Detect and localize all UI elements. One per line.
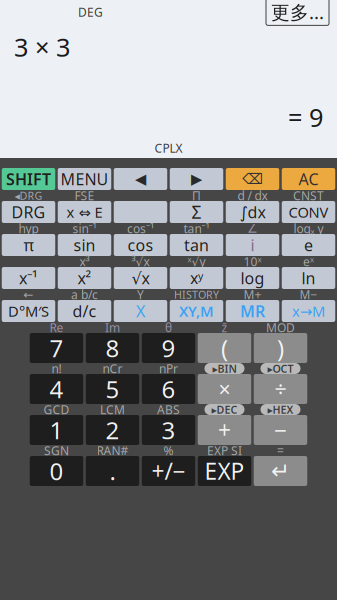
button[interactable]: e — [282, 234, 335, 256]
button[interactable]: Σ — [170, 201, 223, 223]
button[interactable]: − — [254, 415, 307, 445]
staticText: 7 — [49, 332, 63, 364]
staticText: 5 — [105, 373, 119, 405]
staticText: xʸ — [190, 267, 203, 289]
button[interactable]: . — [86, 456, 139, 486]
button[interactable]: ∫dx — [226, 201, 279, 223]
button[interactable]: EXP — [198, 456, 251, 486]
staticText: CPLX — [154, 140, 182, 156]
staticText: ³√x — [131, 253, 149, 269]
staticText: × — [218, 375, 230, 403]
button[interactable]: X — [114, 300, 167, 322]
staticText: x³ — [79, 253, 89, 269]
staticText: ▸BIN — [212, 361, 236, 376]
staticText: RAN# — [96, 442, 128, 458]
button[interactable]: SHIFT — [2, 168, 55, 190]
staticText: GCD — [43, 401, 69, 417]
staticText: M+ — [243, 286, 261, 302]
staticText: ⌫ — [242, 171, 263, 187]
staticText: ▶ — [191, 171, 202, 187]
button[interactable]: 3 — [142, 415, 195, 445]
staticText: x² — [77, 267, 91, 289]
staticText: a b/c — [71, 286, 98, 302]
button[interactable]: 2 — [86, 415, 139, 445]
button[interactable]: ↵ — [254, 456, 307, 486]
button[interactable]: 7 — [30, 333, 83, 363]
staticText: cos — [127, 234, 153, 256]
button[interactable]: CONV — [282, 201, 335, 223]
staticText: ▸OCT — [267, 361, 293, 376]
staticText: ABS — [157, 401, 180, 417]
staticText: = 9 — [288, 100, 323, 134]
button[interactable]: sin — [58, 234, 111, 256]
button[interactable]: 5 — [86, 374, 139, 404]
button[interactable]: 9 — [142, 333, 195, 363]
button[interactable]: MR — [226, 300, 279, 322]
button[interactable]: ÷ — [254, 374, 307, 404]
staticText: ▸DEC — [211, 402, 237, 417]
staticText: 8 — [105, 332, 119, 364]
button[interactable]: XY,M — [170, 300, 223, 322]
button[interactable]: ⌫ — [226, 168, 279, 190]
button[interactable]: log — [226, 267, 279, 289]
button[interactable]: ) — [254, 333, 307, 363]
button[interactable]: x ⇔ E — [58, 201, 111, 223]
staticText: ˣ√y — [187, 253, 205, 269]
staticText: x→M — [292, 301, 325, 321]
staticText: Im — [105, 319, 120, 335]
button[interactable]: AC — [282, 168, 335, 190]
staticText: ▸HEX — [267, 402, 293, 417]
button[interactable]: D°M′S — [2, 300, 55, 322]
staticText: ← — [23, 288, 33, 301]
staticText: MENU — [60, 168, 108, 190]
staticText: 0 — [49, 455, 63, 487]
staticText: ln — [301, 267, 315, 289]
button[interactable]: 0 — [30, 456, 83, 486]
button[interactable]: d/c — [58, 300, 111, 322]
staticText: sin — [73, 234, 95, 256]
staticText: = — [277, 442, 284, 458]
staticText: x ⇔ E — [66, 202, 102, 222]
staticText: +/− — [151, 456, 185, 486]
button[interactable]: x² — [58, 267, 111, 289]
button[interactable]: cos — [114, 234, 167, 256]
button[interactable]: ◀ — [114, 168, 167, 190]
staticText: e — [304, 234, 313, 256]
staticText: 6 — [161, 373, 175, 405]
button[interactable]: ln — [282, 267, 335, 289]
button[interactable]: 1 — [30, 415, 83, 445]
staticText: ÷ — [274, 375, 286, 403]
staticText: LCM — [100, 401, 125, 417]
button[interactable]: 更多... — [266, 0, 329, 25]
staticText: Σ — [191, 200, 201, 223]
button[interactable]: MENU — [58, 168, 111, 190]
staticText: θ — [165, 319, 172, 335]
staticText: ↵ — [271, 458, 290, 484]
button[interactable]: 4 — [30, 374, 83, 404]
button[interactable]: + — [198, 415, 251, 445]
staticText: HISTORY — [174, 287, 219, 302]
button[interactable]: 6 — [142, 374, 195, 404]
staticText: ) — [277, 332, 284, 364]
staticText: − — [274, 415, 287, 445]
button[interactable]: x→M — [282, 300, 335, 322]
button[interactable]: × — [198, 374, 251, 404]
staticText: X — [136, 300, 145, 322]
button[interactable]: tan — [170, 234, 223, 256]
button[interactable] — [114, 201, 167, 223]
staticText: SHIFT — [6, 168, 51, 190]
button[interactable]: xʸ — [170, 267, 223, 289]
button[interactable]: π — [2, 234, 55, 256]
button[interactable]: +/− — [142, 456, 195, 486]
button[interactable]: ( — [198, 333, 251, 363]
staticText: EXP SI — [207, 442, 242, 458]
staticText: MOD — [266, 319, 295, 335]
staticText: CONV — [288, 202, 328, 222]
button[interactable]: x⁻¹ — [2, 267, 55, 289]
button[interactable]: ▶ — [170, 168, 223, 190]
button[interactable]: i — [226, 234, 279, 256]
button[interactable]: DRG — [2, 201, 55, 223]
button[interactable]: 8 — [86, 333, 139, 363]
staticText: d / dx — [237, 187, 267, 203]
button[interactable]: √x — [114, 267, 167, 289]
